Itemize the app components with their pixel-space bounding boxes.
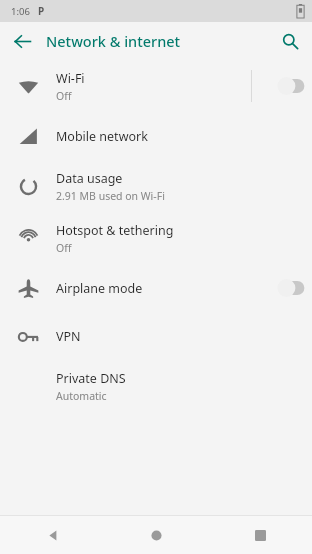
button[interactable]: Private DNS <box>0 360 312 412</box>
staticText: P <box>38 4 45 18</box>
staticText: Automatic <box>56 389 107 403</box>
staticText: 2.91 MB used on Wi-Fi <box>56 189 165 203</box>
staticText: Private DNS <box>56 370 126 387</box>
staticText: Hotspot & tethering <box>56 222 174 239</box>
staticText: Off <box>56 89 72 103</box>
button[interactable]: VPN <box>0 312 312 360</box>
button[interactable]: Hotspot & tethering <box>0 212 312 264</box>
staticText: Wi-Fi <box>56 70 85 87</box>
button[interactable]: Wi-Fi toggle <box>266 60 312 112</box>
button[interactable]: Recents <box>208 516 312 554</box>
staticText: Off <box>56 241 72 255</box>
button[interactable]: Mobile network <box>0 112 312 160</box>
staticText: Mobile network <box>56 128 148 145</box>
button[interactable]: Airplane mode <box>0 264 312 312</box>
staticText: Data usage <box>56 170 123 187</box>
staticText: Network & internet <box>46 31 181 51</box>
staticText: VPN <box>56 328 81 345</box>
button[interactable]: Airplane mode toggle <box>266 264 312 312</box>
button[interactable]: Wi-Fi <box>0 60 312 112</box>
button[interactable]: Back <box>0 516 104 554</box>
staticText: 1:06 <box>11 5 30 18</box>
button[interactable]: Search <box>268 22 312 60</box>
button[interactable]: Data usage <box>0 160 312 212</box>
button[interactable]: Back <box>0 22 44 60</box>
staticText: Airplane mode <box>56 280 143 297</box>
button[interactable]: Home <box>104 516 208 554</box>
